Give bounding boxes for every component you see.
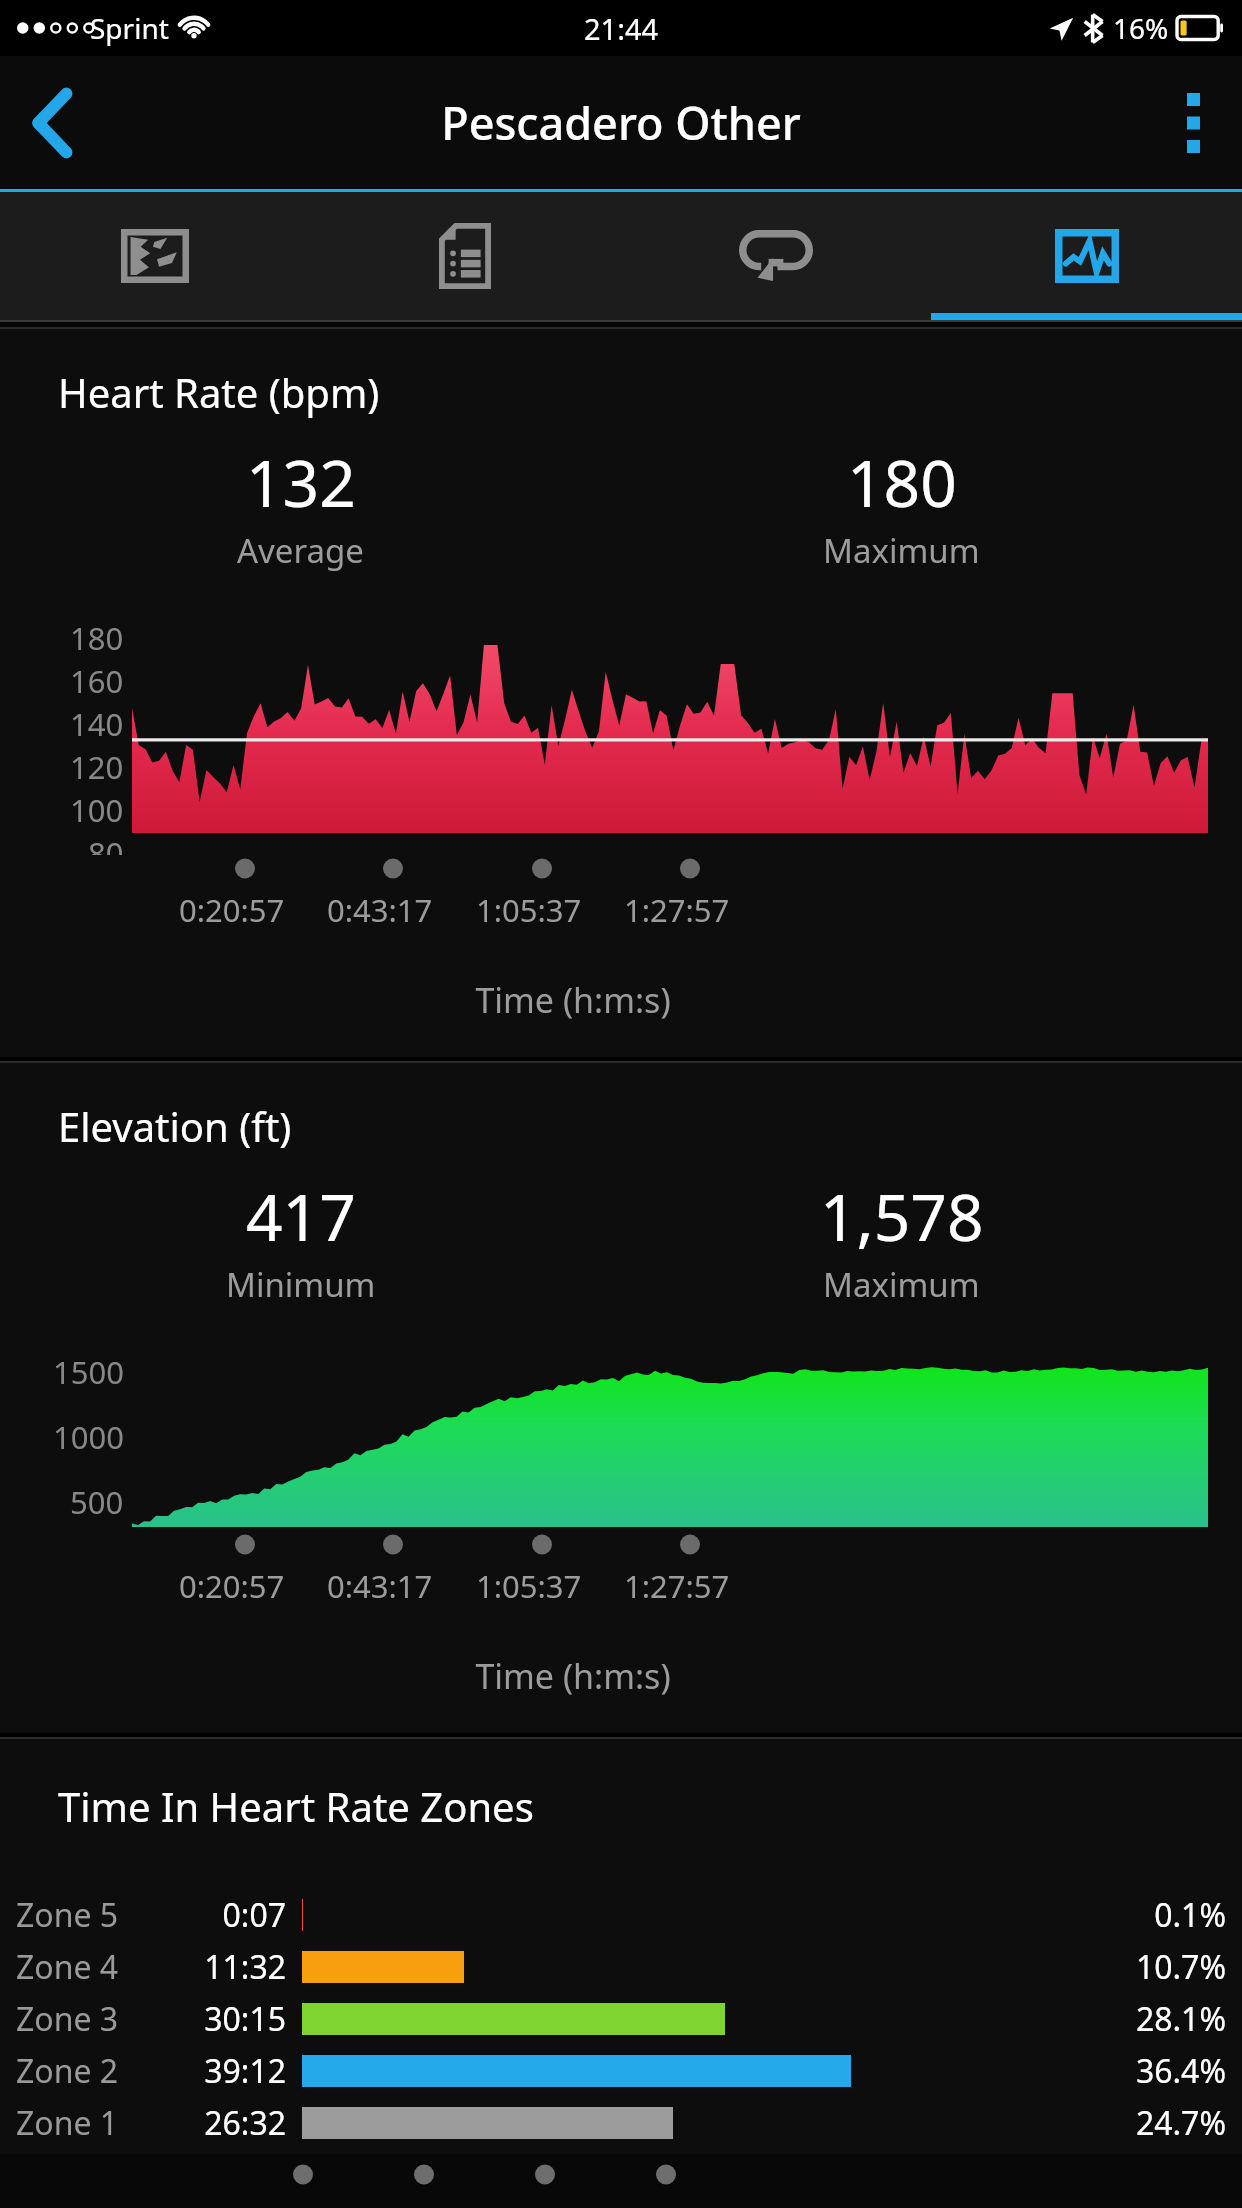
staticText: 180	[70, 617, 124, 659]
staticText: 1:27:57	[624, 1565, 730, 1607]
staticText: 0:43:17	[327, 1565, 433, 1607]
staticText: 132	[246, 439, 356, 526]
staticText: 0:43:17	[327, 889, 433, 931]
staticText: Average	[237, 528, 364, 573]
button[interactable]: Zone 1	[0, 2097, 1242, 2149]
staticText: Time (h:m:s)	[0, 1653, 1146, 1699]
button[interactable]: More options	[1144, 61, 1242, 185]
staticText: Sprint	[90, 9, 169, 47]
staticText: 417	[246, 1173, 356, 1260]
staticText: Zone 1	[16, 2101, 168, 2145]
button[interactable]: Laps	[620, 192, 931, 320]
staticText: 11:32	[168, 1945, 286, 1989]
staticText: 28.1%	[1100, 1997, 1226, 2041]
staticText: 1000	[53, 1416, 124, 1458]
staticText: 16%	[1113, 9, 1169, 47]
staticText: 26:32	[168, 2101, 286, 2145]
staticText: 21:44	[584, 9, 659, 48]
staticText: Maximum	[823, 1262, 980, 1307]
staticText: Heart Rate (bpm)	[58, 365, 380, 419]
button[interactable]: Zone 2	[0, 2045, 1242, 2097]
button[interactable]: Zone 3	[0, 1993, 1242, 2045]
staticText: Elevation (ft)	[58, 1099, 292, 1153]
staticText: 1:05:37	[476, 889, 582, 931]
staticText: Minimum	[226, 1262, 376, 1307]
staticText: Time (h:m:s)	[0, 977, 1146, 1023]
staticText: 1:27:57	[624, 889, 730, 931]
staticText: 36.4%	[1100, 2049, 1226, 2093]
staticText: Pescadero Other	[441, 92, 801, 153]
staticText: 1,578	[820, 1173, 984, 1260]
staticText: Zone 4	[16, 1945, 168, 1989]
staticText: Zone 2	[16, 2049, 168, 2093]
button[interactable]: Map	[0, 192, 310, 320]
staticText: 0:20:57	[179, 889, 285, 931]
button[interactable]: Charts	[931, 192, 1242, 320]
staticText: 10.7%	[1100, 1945, 1226, 1989]
staticText: 100	[70, 789, 124, 831]
staticText: 1500	[53, 1351, 124, 1393]
button[interactable]: Back	[0, 61, 104, 185]
staticText: 80	[88, 832, 124, 855]
staticText: 1:05:37	[476, 1565, 582, 1607]
staticText: 0:20:57	[179, 1565, 285, 1607]
staticText: 0.1%	[1100, 1893, 1226, 1937]
staticText: Zone 3	[16, 1997, 168, 2041]
staticText: 30:15	[168, 1997, 286, 2041]
staticText: Time In Heart Rate Zones	[58, 1779, 534, 1833]
staticText: 0:07	[168, 1893, 286, 1937]
staticText: Zone 5	[16, 1893, 168, 1937]
button[interactable]: Zone 4	[0, 1941, 1242, 1993]
staticText: Maximum	[823, 528, 980, 573]
staticText: 160	[70, 660, 124, 702]
button[interactable]: Zone 5	[0, 1889, 1242, 1941]
staticText: 120	[70, 746, 124, 788]
staticText: 24.7%	[1100, 2101, 1226, 2145]
button[interactable]: Details	[310, 192, 620, 320]
staticText: 180	[847, 439, 957, 526]
staticText: 140	[70, 703, 124, 745]
staticText: 39:12	[168, 2049, 286, 2093]
staticText: 500	[70, 1481, 124, 1523]
